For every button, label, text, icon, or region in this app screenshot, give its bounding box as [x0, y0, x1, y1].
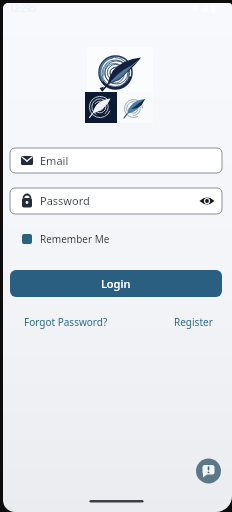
staticText: Password [40, 193, 90, 208]
staticText: Email [40, 153, 69, 168]
staticText: Forgot Password? [24, 315, 108, 329]
staticText: Remember Me [40, 232, 110, 246]
staticText: Login [101, 276, 131, 291]
staticText: Register [174, 315, 213, 329]
staticText: 12:25 [10, 3, 31, 14]
